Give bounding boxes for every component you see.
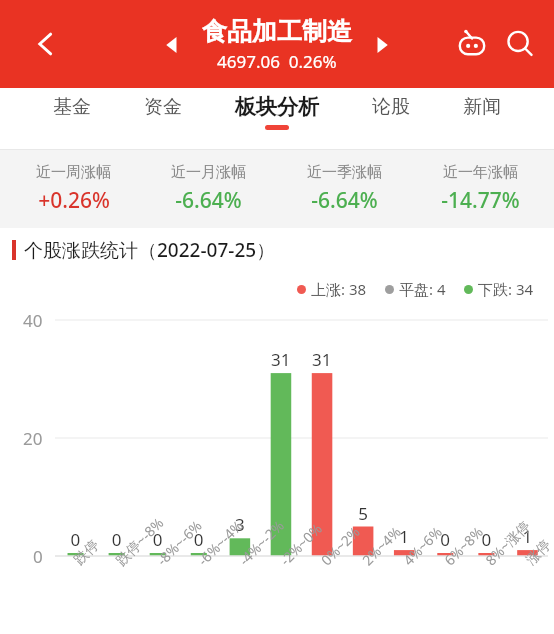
staticText: 个股涨跌统计（2022-07-25） — [24, 237, 276, 263]
staticText: -6.64% — [311, 186, 378, 215]
button[interactable]: 资金 — [138, 89, 188, 135]
staticText: 近一周涨幅 — [36, 163, 111, 182]
staticText: 近一年涨幅 — [443, 163, 518, 182]
staticText: 上涨: 38 — [311, 279, 367, 299]
button[interactable]: Next sector — [362, 25, 402, 65]
button[interactable]: 下跌: 34 — [464, 279, 534, 299]
button[interactable]: Back — [22, 20, 70, 68]
button[interactable]: 近一年涨幅 — [412, 163, 548, 215]
button[interactable]: Previous sector — [152, 25, 192, 65]
button[interactable]: 基金 — [47, 89, 97, 135]
staticText: -14.77% — [441, 186, 520, 215]
staticText: 板块分析 — [235, 94, 319, 120]
staticText: 新闻 — [463, 95, 501, 119]
staticText: 4697.06 0.26% — [217, 50, 337, 73]
button[interactable]: 近一月涨幅 — [141, 163, 276, 215]
staticText: -6.64% — [175, 186, 242, 215]
button[interactable]: 平盘: 4 — [385, 279, 446, 299]
staticText: 食品加工制造 — [202, 16, 352, 47]
staticText: 近一月涨幅 — [171, 163, 246, 182]
staticText: 平盘: 4 — [399, 279, 446, 299]
button[interactable]: Assistant robot — [448, 20, 496, 68]
button[interactable]: 板块分析 — [229, 88, 325, 136]
button[interactable]: Search — [496, 20, 544, 68]
button[interactable]: 近一季涨幅 — [276, 163, 412, 215]
staticText: 近一季涨幅 — [307, 163, 382, 182]
staticText: +0.26% — [38, 186, 110, 215]
staticText: 资金 — [144, 95, 182, 119]
staticText: 基金 — [53, 95, 91, 119]
staticText: 论股 — [372, 95, 410, 119]
button[interactable]: 近一周涨幅 — [6, 163, 141, 215]
staticText: 下跌: 34 — [478, 279, 534, 299]
button[interactable]: 新闻 — [457, 89, 507, 135]
button[interactable]: 上涨: 38 — [297, 279, 367, 299]
button[interactable]: 论股 — [366, 89, 416, 135]
